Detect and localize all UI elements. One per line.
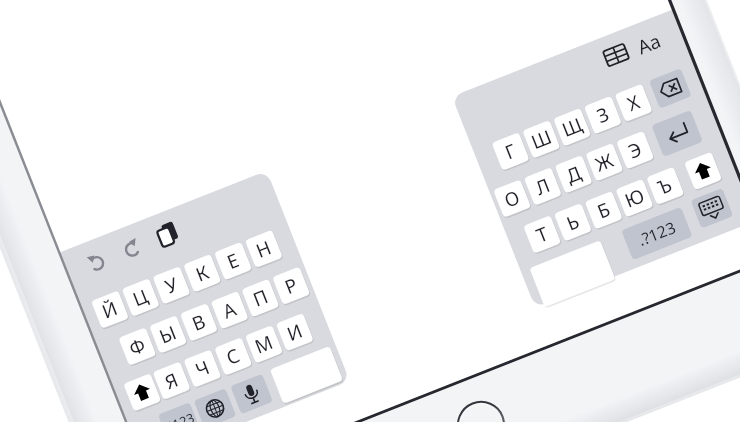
button[interactable]	[0, 0, 740, 422]
